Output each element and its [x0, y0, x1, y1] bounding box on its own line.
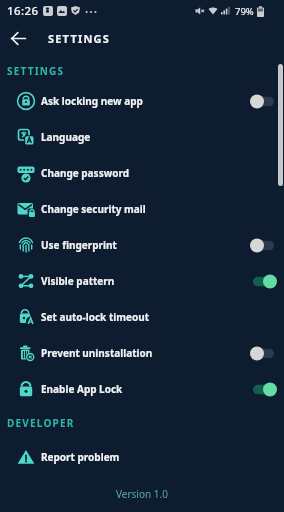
- button[interactable]: [250, 346, 277, 361]
- staticText: Change password: [41, 166, 130, 180]
- staticText: Change security mail: [41, 202, 146, 216]
- staticText: Language: [41, 130, 91, 144]
- staticText: Version 1.0: [116, 487, 168, 501]
- button[interactable]: Language: [0, 119, 284, 155]
- button[interactable]: [250, 238, 277, 253]
- staticText: 16:26: [7, 3, 39, 19]
- staticText: Use fingerprint: [41, 238, 117, 252]
- staticText: SETTINGS: [7, 64, 65, 78]
- button[interactable]: Visible pattern: [0, 263, 284, 299]
- staticText: Ask locking new app: [41, 94, 143, 108]
- button[interactable]: Report problem: [0, 439, 284, 475]
- staticText: DEVELOPER: [7, 416, 75, 430]
- button[interactable]: [250, 94, 277, 109]
- staticText: Report problem: [41, 450, 120, 464]
- button[interactable]: Prevent uninstallation: [0, 335, 284, 371]
- button[interactable]: Set auto-lock timeout: [0, 299, 284, 335]
- button[interactable]: Change security mail: [0, 191, 284, 227]
- staticText: 79%: [235, 5, 254, 18]
- staticText: Visible pattern: [41, 274, 115, 288]
- staticText: Prevent uninstallation: [41, 346, 153, 360]
- button[interactable]: Ask locking new app: [0, 83, 284, 119]
- button[interactable]: [250, 274, 277, 289]
- staticText: Enable App Lock: [41, 382, 123, 396]
- button[interactable]: Enable App Lock: [0, 371, 284, 407]
- button[interactable]: Use fingerprint: [0, 227, 284, 263]
- button[interactable]: [0, 22, 36, 55]
- staticText: Set auto-lock timeout: [41, 310, 150, 324]
- button[interactable]: Change password: [0, 155, 284, 191]
- button[interactable]: [250, 382, 277, 397]
- staticText: SETTINGS: [48, 31, 110, 46]
